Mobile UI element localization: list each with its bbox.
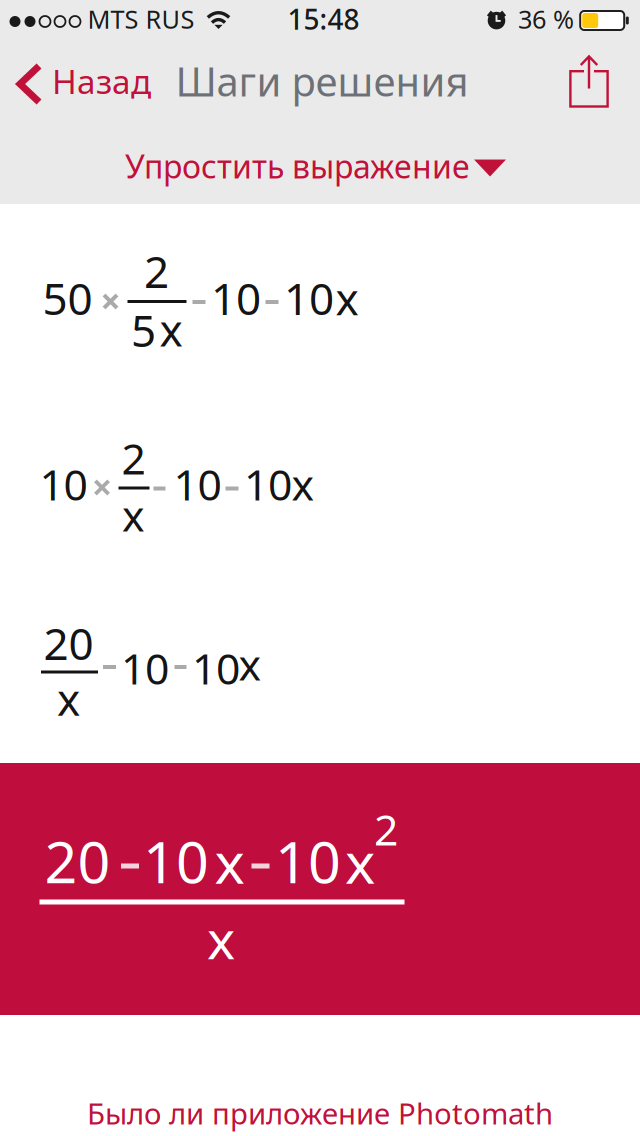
- staticText: 10: [143, 823, 209, 899]
- staticText: 10: [284, 269, 334, 327]
- staticText: 15:48: [287, 0, 359, 38]
- staticText: 10: [244, 456, 292, 512]
- staticText: 10: [275, 823, 341, 899]
- staticText: x: [122, 487, 145, 543]
- button[interactable]: Назад: [0, 47, 165, 121]
- staticText: 2: [121, 430, 145, 486]
- staticText: 50: [42, 269, 92, 327]
- staticText: x: [159, 300, 182, 359]
- staticText: x: [345, 823, 375, 899]
- button[interactable]: Поделиться: [549, 41, 629, 121]
- staticText: 5: [131, 301, 156, 359]
- staticText: x: [238, 636, 261, 692]
- staticText: Упростить выражение: [125, 145, 470, 187]
- staticText: x: [291, 456, 314, 512]
- staticText: 2: [374, 801, 398, 857]
- staticText: x: [57, 669, 80, 728]
- staticText: 36 %: [518, 2, 574, 36]
- staticText: 10: [211, 269, 261, 327]
- staticText: 10: [192, 640, 240, 696]
- staticText: Назад: [52, 59, 151, 103]
- staticText: 10: [121, 640, 169, 696]
- staticText: MTS RUS: [87, 2, 194, 36]
- staticText: x: [335, 269, 358, 327]
- staticText: 10: [39, 456, 87, 512]
- staticText: 10: [173, 456, 221, 512]
- staticText: 20: [43, 614, 93, 672]
- staticText: Шаги решения: [175, 54, 468, 107]
- button[interactable]: Упростить выражение: [110, 138, 530, 196]
- staticText: 20: [44, 823, 110, 899]
- staticText: Было ли приложение Photomath: [87, 1093, 553, 1132]
- staticText: x: [207, 903, 235, 974]
- staticText: x: [214, 823, 244, 899]
- staticText: 2: [144, 242, 169, 300]
- button[interactable]: Было ли приложение Photomath: [70, 1087, 570, 1136]
